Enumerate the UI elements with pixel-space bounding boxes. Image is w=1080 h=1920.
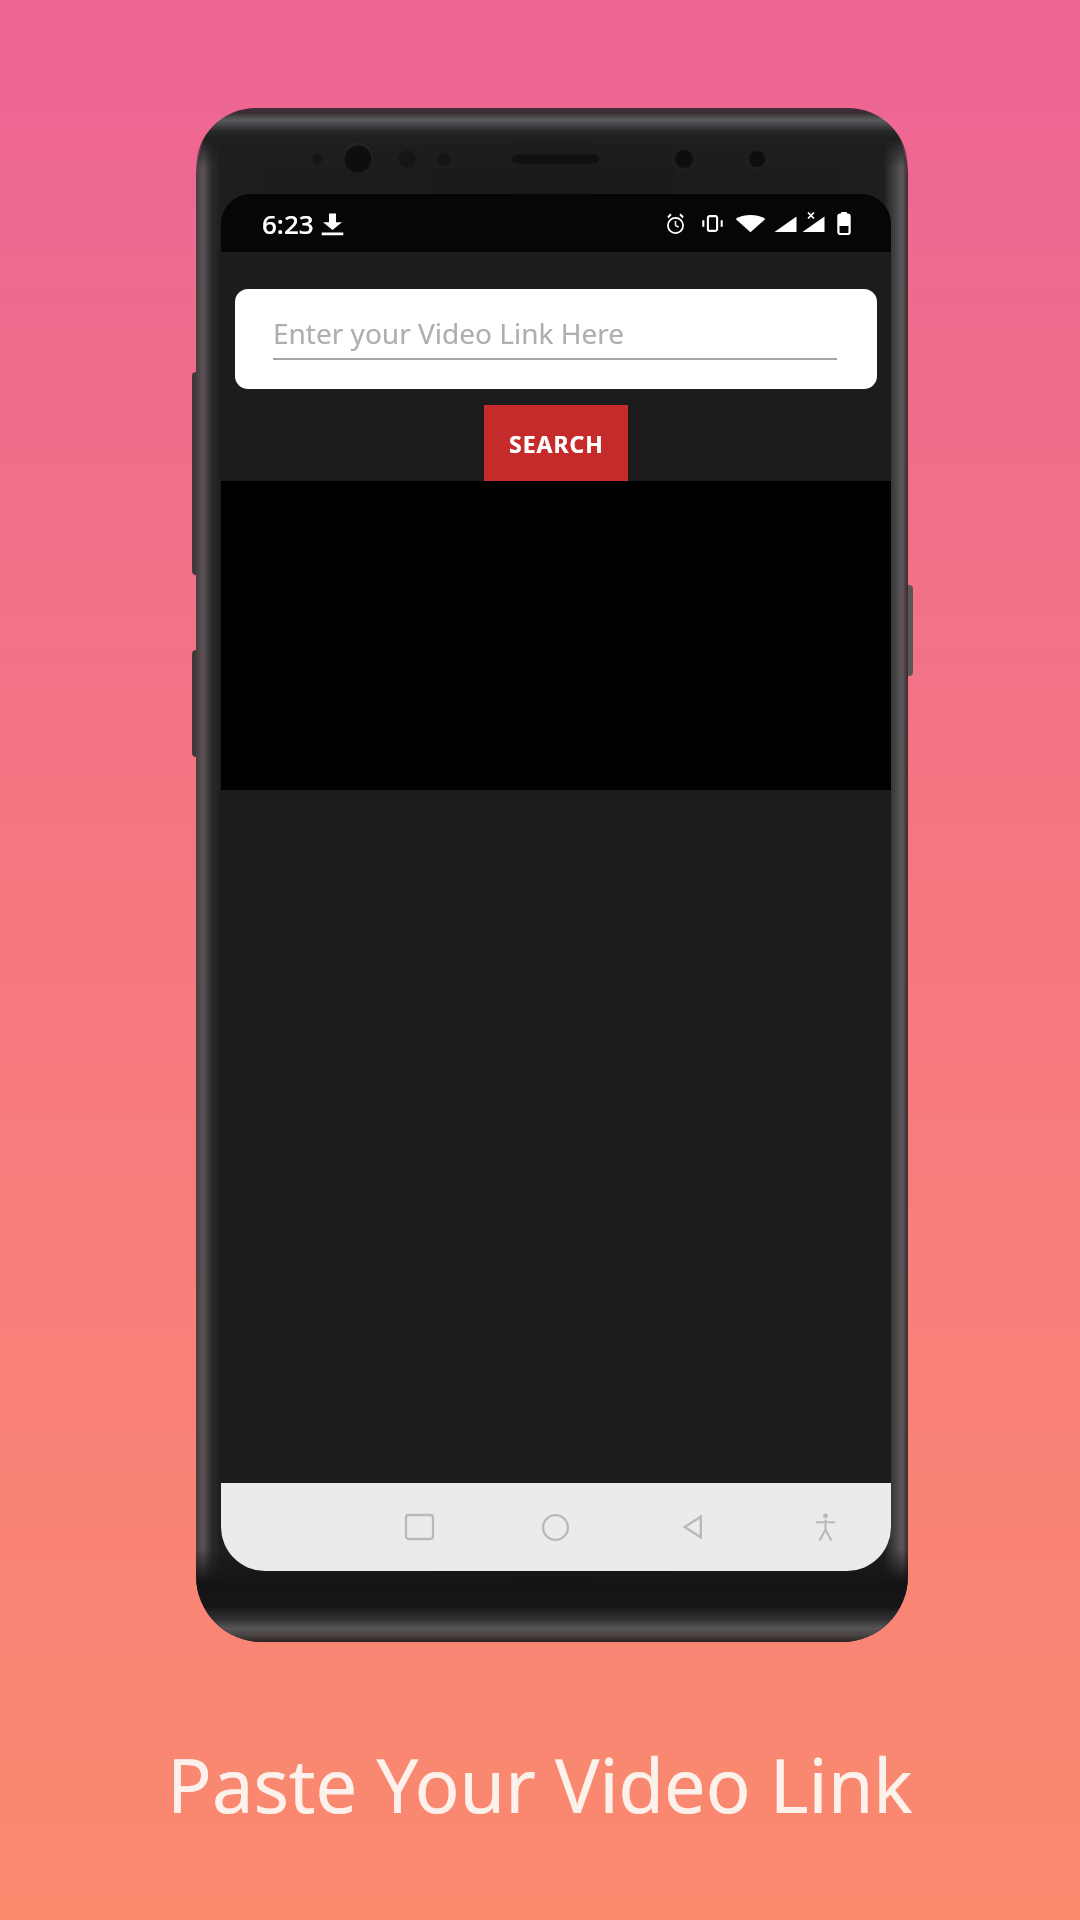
button[interactable]: Home [523,1495,587,1559]
button[interactable]: Back [661,1495,725,1559]
staticText: Enter your Video Link Here [273,314,625,352]
button[interactable]: Enter your Video Link Here [235,289,877,389]
button[interactable]: Accessibility [793,1495,857,1559]
button[interactable]: Recent apps [387,1495,451,1559]
staticText: 6:23 [262,206,314,241]
staticText: SEARCH [509,428,604,459]
staticText: Paste Your Video Link [0,1734,1080,1835]
button[interactable]: SEARCH [484,405,628,481]
